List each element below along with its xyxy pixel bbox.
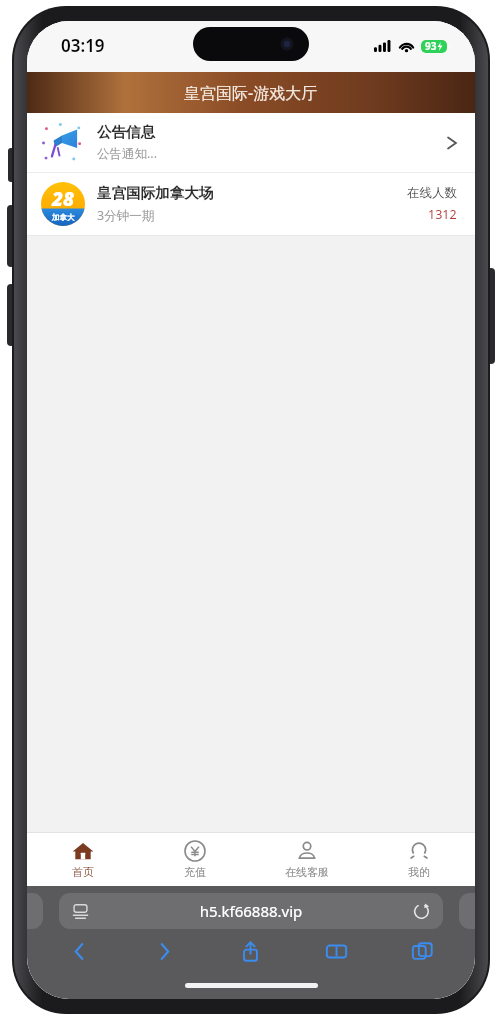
staticText: 93 [425,39,437,53]
staticText: 皇宫国际加拿大场 [97,184,213,202]
staticText: 我的 [408,865,430,879]
button[interactable]: 首页 [27,833,139,886]
button[interactable]: Tabs [379,929,465,973]
button[interactable]: Next tab [459,893,475,929]
staticText: 03:19 [61,34,105,57]
staticText: 充值 [184,865,206,879]
staticText: 在线客服 [285,865,329,879]
button[interactable]: 充值 [139,833,251,886]
staticText: 28 [52,186,75,212]
staticText: 公告信息 [97,123,155,141]
staticText: 公告通知... [97,145,158,162]
button[interactable]: 我的 [363,833,475,886]
staticText: 3分钟一期 [97,207,155,224]
staticText: 1312 [428,206,457,223]
staticText: h5.kf66888.vip [89,901,413,921]
button[interactable]: 在线客服 [251,833,363,886]
button[interactable]: Previous tab [27,893,43,929]
button[interactable]: Bookmarks [293,929,379,973]
other: Reload [413,903,430,920]
button[interactable]: Share [207,929,293,973]
other: Reader view [72,903,89,920]
staticText: 加拿大 [52,213,75,222]
button[interactable]: 公告信息 [27,113,475,172]
button[interactable]: Reader view [59,893,443,929]
button[interactable]: Forward [122,929,207,973]
button[interactable]: Back [37,929,122,973]
button[interactable]: 28 [27,173,475,235]
staticText: 首页 [72,865,94,879]
staticText: 皇宫国际-游戏大厅 [184,82,318,104]
staticText: 在线人数 [407,185,457,201]
